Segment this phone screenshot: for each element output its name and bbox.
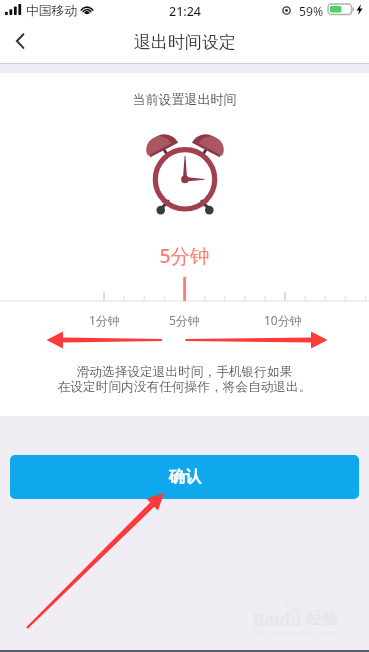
staticText: 中国移动 — [26, 3, 78, 19]
staticText: 当前设置退出时间 — [0, 91, 369, 107]
staticText: 1分钟 — [89, 312, 120, 328]
button[interactable]: 确认 — [10, 455, 359, 499]
staticText: 确认 — [169, 467, 201, 487]
button[interactable]: Back — [0, 22, 42, 63]
staticText: 5分钟 — [0, 242, 369, 269]
staticText: 5分钟 — [169, 312, 200, 328]
staticText: 21:24 — [169, 3, 202, 20]
staticText: Baidu — [253, 608, 302, 631]
staticText: 经验 — [306, 609, 338, 629]
staticText: 滑动选择设定退出时间，手机银行如果 在设定时间内没有任何操作，将会自动退出。 — [0, 364, 369, 395]
staticText: 59% — [299, 3, 324, 20]
staticText: 10分钟 — [264, 312, 302, 328]
staticText: 退出时间设定 — [134, 32, 236, 53]
